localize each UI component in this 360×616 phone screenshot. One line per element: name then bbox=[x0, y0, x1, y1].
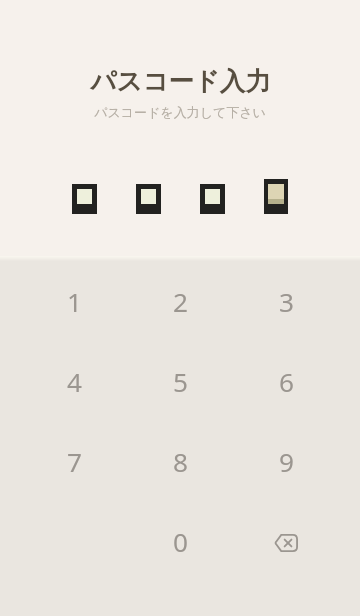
staticText: 7 bbox=[67, 444, 82, 480]
button[interactable]: 4 bbox=[34, 342, 114, 422]
button[interactable]: 6 bbox=[246, 342, 326, 422]
staticText: 4 bbox=[67, 364, 82, 400]
staticText: 1 bbox=[67, 284, 82, 320]
staticText: 9 bbox=[279, 444, 294, 480]
button[interactable]: 8 bbox=[140, 422, 220, 502]
staticText: 5 bbox=[173, 364, 188, 400]
staticText: パスコードを入力して下さい bbox=[94, 104, 266, 120]
button[interactable]: 2 bbox=[140, 262, 220, 342]
staticText: 6 bbox=[279, 364, 294, 400]
button[interactable]: 0 bbox=[140, 502, 220, 582]
button[interactable]: 7 bbox=[34, 422, 114, 502]
staticText: 8 bbox=[173, 444, 188, 480]
button[interactable]: Delete bbox=[246, 502, 326, 582]
staticText: 2 bbox=[173, 284, 188, 320]
staticText: パスコード入力 bbox=[90, 66, 271, 98]
button[interactable]: 1 bbox=[34, 262, 114, 342]
staticText: 0 bbox=[173, 524, 188, 560]
button[interactable]: 9 bbox=[246, 422, 326, 502]
button[interactable]: 3 bbox=[246, 262, 326, 342]
staticText: 3 bbox=[279, 284, 294, 320]
button[interactable]: 5 bbox=[140, 342, 220, 422]
